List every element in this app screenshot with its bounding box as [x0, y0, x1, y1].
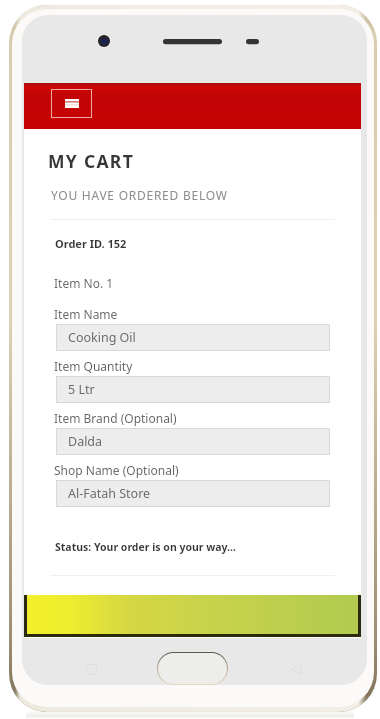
staticText: YOU HAVE ORDERED BELOW [51, 187, 228, 203]
staticText: Item Name [54, 306, 118, 322]
button[interactable]: Menu [51, 89, 92, 118]
staticText: Item Brand (Optional) [54, 410, 177, 426]
button[interactable] [27, 595, 358, 634]
staticText: Al-Fatah Store [68, 485, 151, 502]
staticText: Status: Your order is on your way... [55, 540, 236, 554]
staticText: 5 Ltr [68, 381, 95, 398]
staticText: Cooking Oil [68, 329, 136, 346]
button[interactable]: Home [158, 653, 227, 684]
button[interactable]: Recents [86, 664, 97, 675]
staticText: Dalda [68, 433, 103, 450]
staticText: Item No. 1 [54, 275, 114, 291]
staticText: Order ID. 152 [55, 236, 127, 251]
staticText: MY CART [48, 149, 135, 173]
staticText: Item Quantity [54, 358, 133, 374]
staticText: Shop Name (Optional) [54, 462, 179, 478]
